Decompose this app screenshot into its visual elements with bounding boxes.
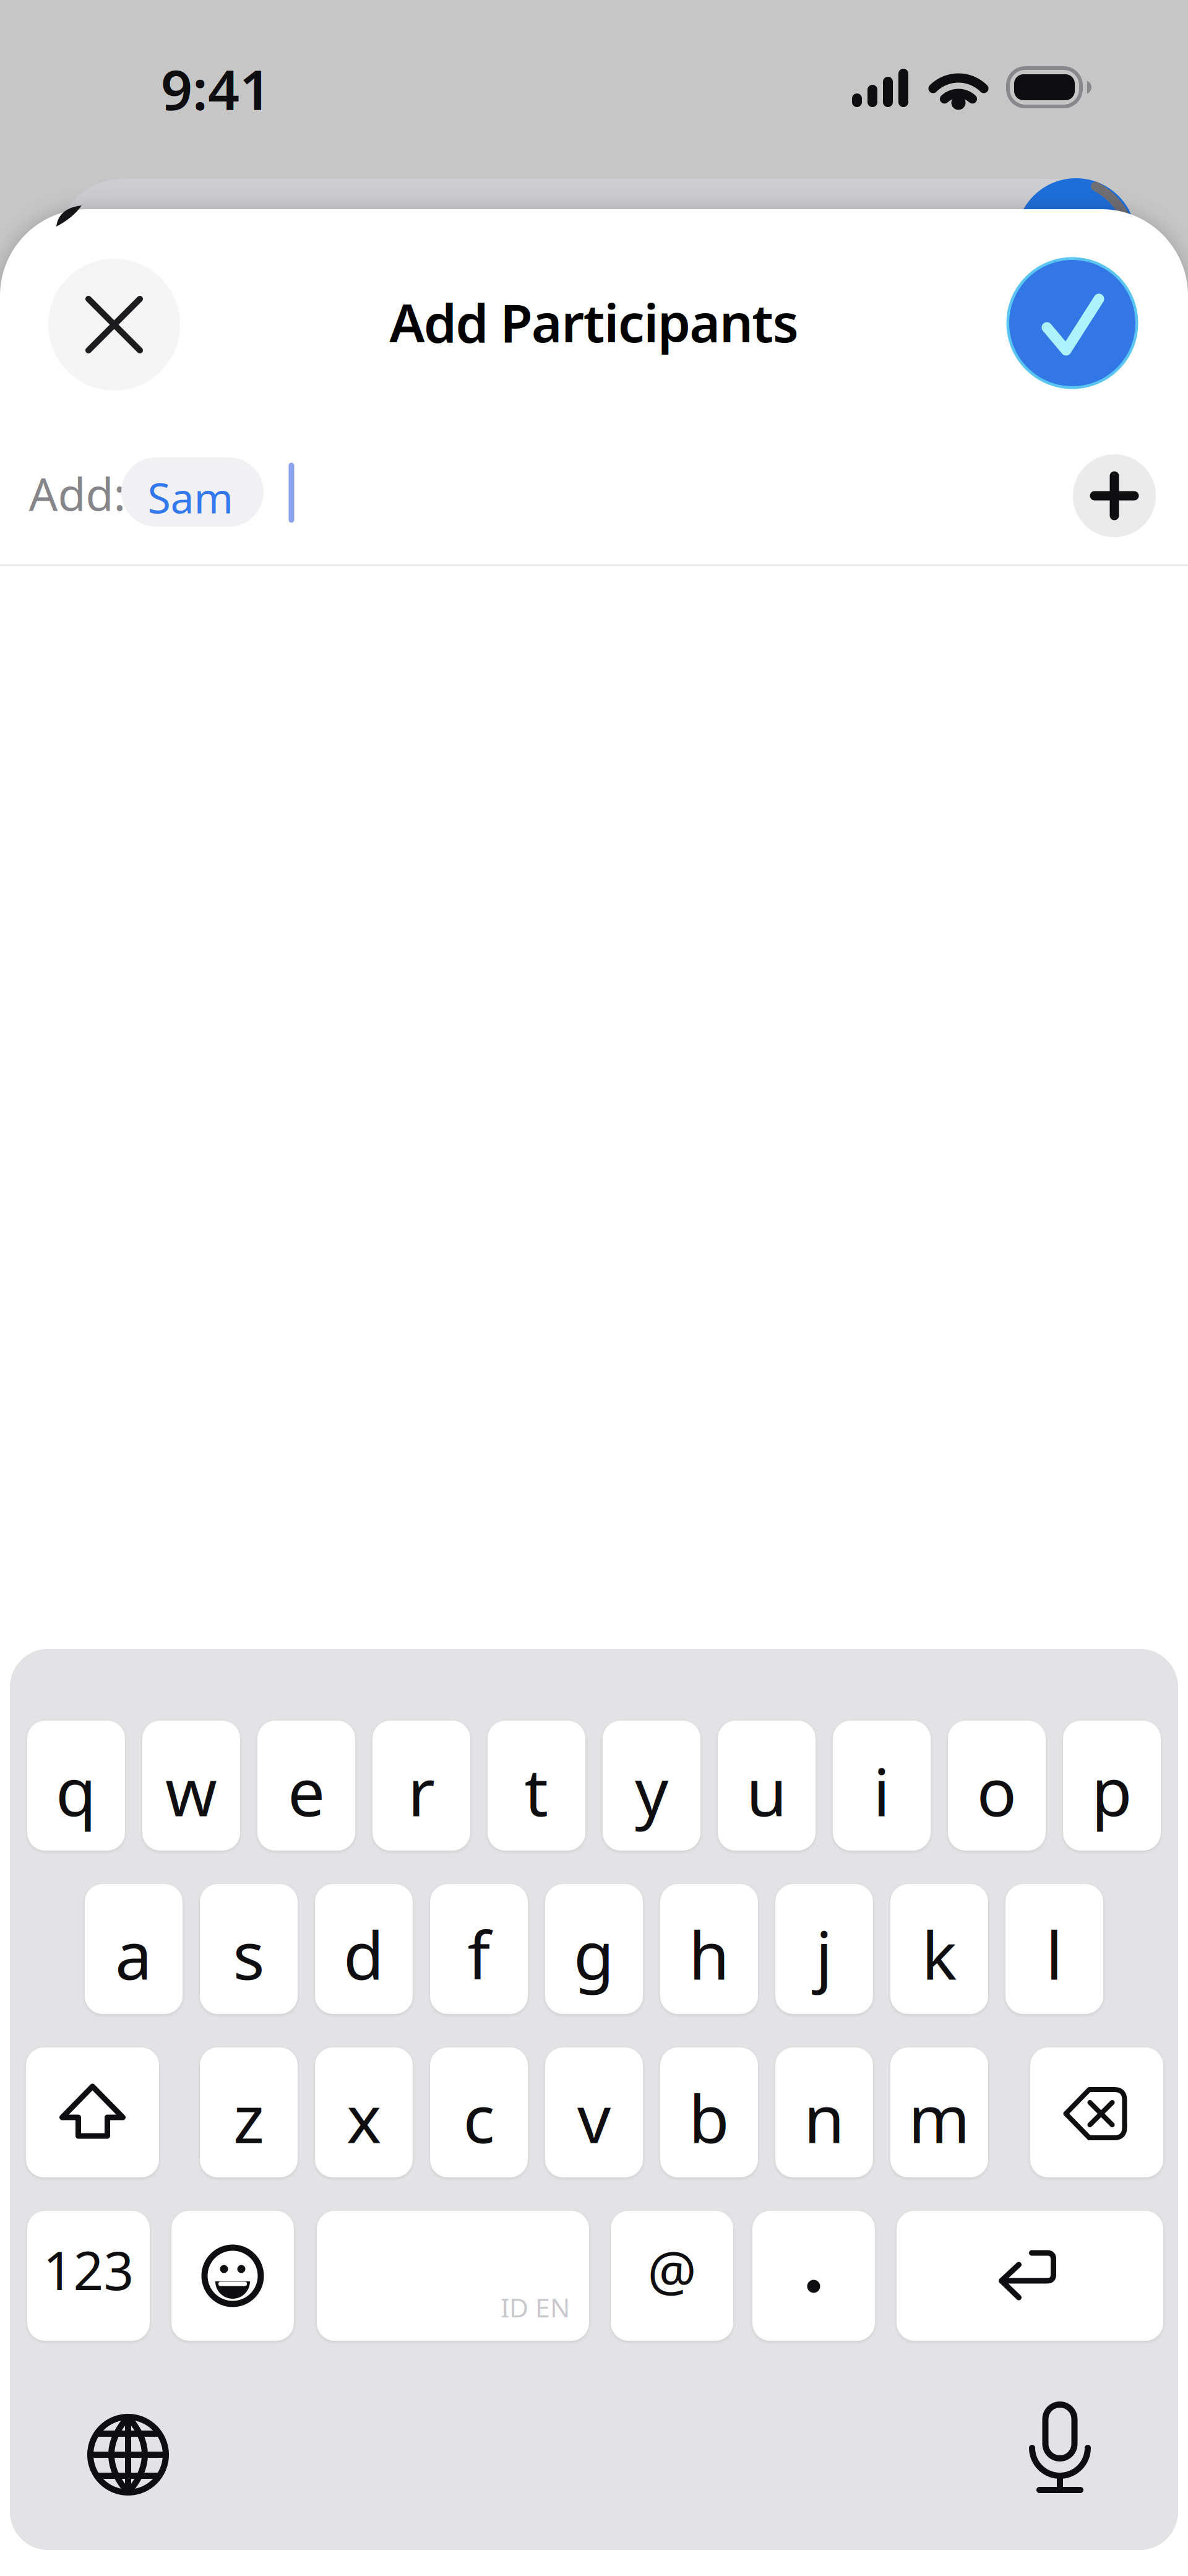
button[interactable]: f: [430, 1884, 528, 2014]
staticText: Sam: [148, 469, 234, 525]
button[interactable]: Dictate: [1020, 2412, 1100, 2492]
button[interactable]: x: [315, 2047, 413, 2177]
button[interactable]: b: [660, 2047, 758, 2177]
button[interactable]: d: [315, 1884, 413, 2014]
staticText: d: [343, 1910, 384, 1998]
button[interactable]: h: [660, 1884, 758, 2014]
button[interactable]: Done: [1006, 257, 1138, 389]
button[interactable]: Return: [897, 2211, 1163, 2341]
staticText: 123: [43, 2235, 134, 2305]
staticText: o: [977, 1747, 1017, 1834]
staticText: f: [467, 1910, 490, 1998]
button[interactable]: r: [372, 1721, 470, 1851]
button[interactable]: q: [27, 1721, 125, 1851]
staticText: u: [746, 1747, 787, 1834]
staticText: y: [635, 1747, 668, 1834]
staticText: k: [922, 1910, 957, 1998]
staticText: j: [816, 1910, 833, 1998]
button[interactable]: Close: [48, 259, 180, 391]
staticText: g: [574, 1910, 614, 1998]
button[interactable]: @: [611, 2211, 733, 2341]
staticText: i: [873, 1747, 890, 1834]
staticText: q: [56, 1747, 97, 1834]
staticText: p: [1091, 1747, 1132, 1834]
button[interactable]: w: [142, 1721, 240, 1851]
button[interactable]: s: [200, 1884, 298, 2014]
staticText: Add:: [29, 463, 126, 523]
staticText: t: [524, 1747, 549, 1834]
staticText: z: [233, 2074, 264, 2161]
staticText: m: [908, 2074, 970, 2161]
staticText: h: [689, 1910, 730, 1998]
button[interactable]: m: [890, 2047, 988, 2177]
button[interactable]: i: [833, 1721, 931, 1851]
button[interactable]: j: [775, 1884, 873, 2014]
button[interactable]: u: [718, 1721, 816, 1851]
button[interactable]: g: [545, 1884, 643, 2014]
staticText: c: [463, 2074, 495, 2161]
button[interactable]: Shift: [26, 2047, 159, 2177]
button[interactable]: Next keyboard: [88, 2414, 168, 2495]
staticText: n: [804, 2074, 845, 2161]
button[interactable]: k: [890, 1884, 988, 2014]
button[interactable]: t: [488, 1721, 585, 1851]
button[interactable]: 123: [27, 2211, 150, 2341]
staticText: Add Participants: [389, 287, 799, 357]
button[interactable]: a: [85, 1884, 183, 2014]
staticText: x: [346, 2074, 381, 2161]
button[interactable]: Emoji: [171, 2211, 294, 2341]
button[interactable]: v: [545, 2047, 643, 2177]
button[interactable]: Space: [317, 2211, 589, 2341]
staticText: b: [689, 2074, 730, 2161]
button[interactable]: l: [1005, 1884, 1103, 2014]
staticText: @: [648, 2233, 696, 2306]
button[interactable]: Period: [752, 2211, 875, 2341]
staticText: r: [408, 1747, 435, 1834]
staticText: 9:41: [161, 52, 271, 125]
button[interactable]: p: [1063, 1721, 1161, 1851]
button[interactable]: z: [200, 2047, 298, 2177]
staticText: a: [115, 1910, 152, 1998]
button[interactable]: c: [430, 2047, 528, 2177]
staticText: v: [577, 2074, 611, 2161]
button[interactable]: e: [257, 1721, 355, 1851]
staticText: l: [1046, 1910, 1063, 1998]
staticText: s: [233, 1910, 265, 1998]
staticText: ID EN: [501, 2290, 570, 2325]
staticText: w: [165, 1747, 217, 1834]
button[interactable]: n: [775, 2047, 873, 2177]
button[interactable]: o: [948, 1721, 1046, 1851]
staticText: e: [288, 1747, 325, 1834]
button[interactable]: Delete: [1030, 2047, 1163, 2177]
button[interactable]: Add contact: [1073, 454, 1156, 537]
button[interactable]: y: [603, 1721, 700, 1851]
